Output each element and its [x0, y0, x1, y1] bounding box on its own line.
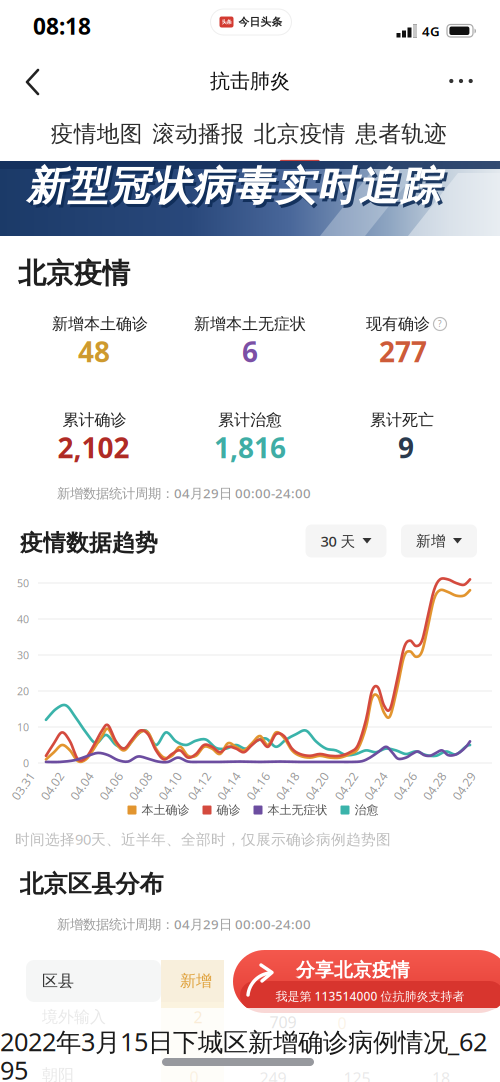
staticText: 2022年3月15日下城区新增确诊病例情况_62 — [0, 1025, 487, 1058]
staticText: 抗击肺炎 — [210, 69, 290, 93]
staticText: 北京疫情 — [254, 120, 346, 148]
staticText: 04.20 — [301, 778, 332, 794]
staticText: 125 — [343, 1067, 370, 1082]
staticText: 30 天 — [320, 531, 355, 551]
button[interactable]: 北京疫情 — [249, 120, 350, 163]
staticText: 04.02 — [37, 778, 68, 794]
staticText: 04.06 — [96, 778, 127, 794]
staticText: 9 — [398, 429, 414, 466]
staticText: 本土确诊 — [141, 803, 189, 817]
staticText: 1,816 — [214, 429, 286, 466]
staticText: 境外输入 — [42, 1007, 106, 1027]
button[interactable]: 滚动播报 — [147, 120, 249, 163]
staticText: 95 — [0, 1053, 28, 1082]
staticText: 709 — [269, 1011, 296, 1033]
button[interactable]: 新增 — [401, 524, 477, 557]
staticText: 04.18 — [272, 778, 303, 794]
staticText: 6 — [242, 333, 258, 370]
staticText: 分享北京疫情 — [296, 958, 410, 981]
staticText: 10 — [17, 720, 29, 734]
staticText: 04.29 — [448, 778, 479, 794]
button[interactable]: 患者轨迹 — [350, 120, 452, 163]
staticText: 累计死亡 — [370, 410, 434, 430]
staticText: 患者轨迹 — [355, 120, 447, 148]
staticText: 新增本土确诊 — [52, 314, 148, 334]
staticText: 0 — [23, 756, 29, 770]
staticText: 04.26 — [390, 778, 421, 794]
staticText: 新增 — [180, 971, 212, 991]
staticText: 新增 — [416, 532, 446, 550]
button[interactable]: 今日头条 — [210, 9, 291, 35]
staticText: 北京区县分布 — [19, 869, 163, 899]
staticText: 疫情数据趋势 — [20, 529, 158, 557]
staticText: 0 — [337, 1012, 346, 1034]
staticText: 新增数据统计周期：04月29日 00:00-24:00 — [57, 915, 311, 933]
staticText: 18 — [432, 1067, 450, 1082]
staticText: 30 — [17, 648, 29, 662]
staticText: 头条 — [221, 19, 231, 25]
staticText: ? — [438, 319, 442, 329]
staticText: 0 — [189, 1066, 198, 1082]
staticText: 本土无症状 — [267, 803, 327, 817]
button[interactable]: 30 天 — [305, 524, 386, 557]
button[interactable]: 疫情地图 — [46, 120, 147, 163]
staticText: 08:18 — [33, 11, 91, 41]
staticText: 2 — [193, 1006, 202, 1028]
staticText: 累计治愈 — [218, 410, 282, 430]
staticText: 04.16 — [243, 778, 274, 794]
staticText: 滚动播报 — [152, 120, 244, 148]
staticText: 04.04 — [66, 778, 97, 794]
staticText: 治愈 — [354, 803, 378, 817]
button[interactable]: 现有确诊说明 — [430, 314, 449, 333]
staticText: 48 — [78, 333, 110, 370]
staticText: 249 — [259, 1067, 286, 1082]
staticText: 03.31 — [7, 778, 38, 794]
staticText: 20 — [17, 684, 29, 698]
staticText: 04.14 — [213, 778, 244, 794]
staticText: 新增数据统计周期：04月29日 00:00-24:00 — [57, 484, 311, 502]
staticText: 4G — [422, 22, 440, 40]
button[interactable]: More — [441, 71, 481, 91]
staticText: 新型冠状病毒实时追踪 — [26, 162, 440, 211]
staticText: 04.22 — [331, 778, 362, 794]
button[interactable]: Back — [15, 59, 51, 105]
staticText: 04.28 — [419, 778, 450, 794]
staticText: 04.12 — [184, 778, 215, 794]
staticText: 今日头条 — [238, 15, 282, 28]
staticText: 北京疫情 — [18, 256, 130, 291]
staticText: 04.24 — [360, 778, 391, 794]
staticText: 04.10 — [154, 778, 185, 794]
staticText: 我是第 113514000 位抗肺炎支持者 — [275, 988, 464, 1004]
staticText: 区县 — [42, 971, 74, 991]
staticText: 朝阳 — [42, 1065, 74, 1082]
button[interactable]: 分享北京疫情 — [233, 950, 500, 1013]
staticText: 40 — [17, 612, 29, 626]
staticText: 新型冠状病毒实时追踪 — [29, 165, 442, 214]
staticText: 累计确诊 — [62, 410, 126, 430]
staticText: 2,102 — [57, 429, 129, 466]
staticText: 50 — [17, 576, 29, 590]
staticText: 时间选择90天、近半年、全部时，仅展示确诊病例趋势图 — [15, 829, 391, 849]
staticText: 04.08 — [125, 778, 156, 794]
staticText: 277 — [379, 333, 427, 370]
staticText: 确诊 — [216, 803, 240, 817]
staticText: 新增本土无症状 — [194, 314, 306, 334]
staticText: 疫情地图 — [51, 120, 143, 148]
staticText: 现有确诊 — [366, 314, 430, 334]
